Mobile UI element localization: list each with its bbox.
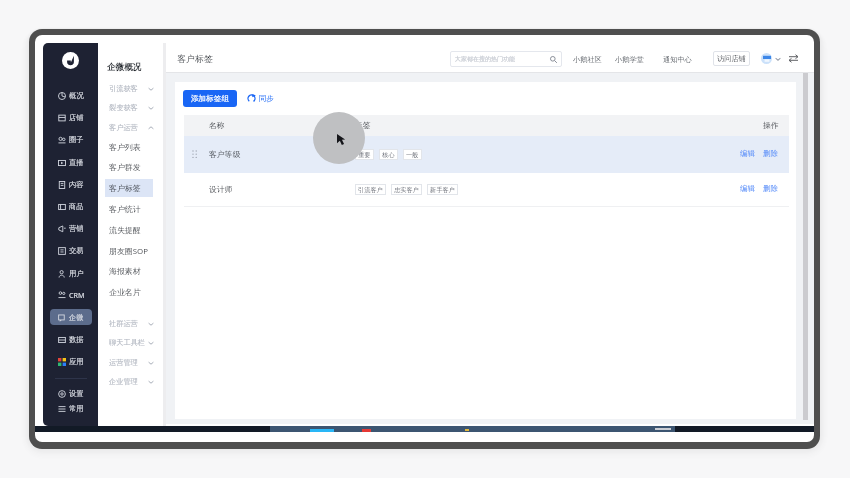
staticText: 客户等级: [209, 149, 241, 159]
button[interactable]: 大家都在搜的热门功能: [450, 51, 562, 67]
staticText: 常用: [69, 404, 84, 413]
staticText: 应用: [69, 357, 84, 366]
staticText: 重要: [358, 151, 371, 159]
button[interactable]: 客户运营: [109, 119, 154, 136]
button[interactable]: 社群运营: [109, 315, 154, 332]
button[interactable]: 流失提醒: [98, 219, 164, 240]
button[interactable]: 应用: [50, 353, 92, 369]
button[interactable]: 企业名片: [98, 281, 164, 302]
button[interactable]: 设计师: [184, 173, 789, 206]
staticText: 引流客户: [358, 186, 383, 194]
button[interactable]: 客户标签: [98, 177, 164, 198]
other: Switch account: [789, 54, 798, 63]
button[interactable]: 聊天工具栏: [109, 334, 154, 351]
button[interactable]: 同步: [247, 94, 274, 103]
staticText: 企业名片: [109, 287, 141, 297]
button[interactable]: 内容: [50, 176, 92, 192]
staticText: 社群运营: [109, 319, 138, 328]
staticText: 商品: [69, 202, 84, 211]
staticText: 营销: [69, 224, 84, 233]
staticText: 客户运营: [109, 123, 138, 132]
staticText: 同步: [259, 94, 274, 103]
staticText: 名称: [209, 120, 225, 130]
button[interactable]: 企微: [50, 309, 92, 325]
staticText: 朋友圈SOP: [109, 246, 148, 257]
button[interactable]: CRM: [50, 287, 92, 303]
staticText: 大家都在搜的热门功能: [455, 55, 515, 63]
staticText: 圈子: [69, 135, 84, 144]
staticText: 客户标签: [109, 183, 141, 193]
button[interactable]: Account: [761, 53, 772, 64]
staticText: 裂变获客: [109, 103, 138, 112]
button[interactable]: 海报素材: [98, 260, 164, 281]
staticText: 聊天工具栏: [109, 338, 145, 347]
button[interactable]: 客户列表: [98, 136, 164, 157]
button[interactable]: 常用: [50, 400, 92, 416]
staticText: 店铺: [69, 113, 84, 122]
button[interactable]: 裂变获客: [109, 99, 154, 116]
button[interactable]: 客户统计: [98, 198, 164, 219]
staticText: 操作: [763, 120, 779, 130]
staticText: 交易: [69, 246, 84, 255]
staticText: 流失提醒: [109, 225, 141, 235]
staticText: 一般: [406, 151, 419, 159]
staticText: 直播: [69, 158, 84, 167]
staticText: 客户群发: [109, 162, 141, 172]
staticText: 核心: [382, 151, 395, 159]
button[interactable]: 店铺: [50, 109, 92, 125]
staticText: 海报素材: [109, 266, 141, 276]
staticText: 数据: [69, 335, 84, 344]
button[interactable]: 小鹅社区: [573, 55, 602, 64]
button[interactable]: 数据: [50, 331, 92, 347]
button[interactable]: 客户等级: [184, 136, 789, 173]
button[interactable]: 小鹅学堂: [615, 55, 644, 64]
staticText: 引流获客: [109, 84, 138, 93]
button[interactable]: 添加标签组: [183, 90, 237, 107]
staticText: 忠实客户: [394, 186, 419, 194]
button[interactable]: 删除: [763, 184, 778, 193]
button[interactable]: 编辑: [740, 184, 755, 193]
button[interactable]: 用户: [50, 265, 92, 281]
staticText: 访问店铺: [717, 54, 746, 63]
button[interactable]: 营销: [50, 220, 92, 236]
button[interactable]: 设置: [50, 385, 92, 401]
staticText: 内容: [69, 180, 84, 189]
button[interactable]: 直播: [50, 154, 92, 170]
button[interactable]: 朋友圈SOP: [98, 240, 164, 261]
staticText: 企微概况: [107, 62, 142, 73]
staticText: 运营管理: [109, 358, 138, 367]
staticText: 客户列表: [109, 142, 141, 152]
staticText: 标签: [355, 120, 371, 130]
button[interactable]: 删除: [763, 149, 778, 158]
button[interactable]: 通知中心: [663, 55, 692, 64]
staticText: 添加标签组: [191, 94, 229, 104]
button[interactable]: 概况: [50, 87, 92, 103]
button[interactable]: 交易: [50, 242, 92, 258]
button[interactable]: 运营管理: [109, 354, 154, 371]
staticText: 客户统计: [109, 204, 141, 214]
staticText: 用户: [69, 269, 84, 278]
button[interactable]: 企业管理: [109, 373, 154, 390]
staticText: 企业管理: [109, 377, 138, 386]
button[interactable]: 商品: [50, 198, 92, 214]
staticText: 企微: [69, 313, 84, 322]
button[interactable]: 引流获客: [109, 80, 154, 97]
staticText: 设计师: [209, 184, 233, 194]
other: Search: [550, 56, 557, 63]
staticText: 新手客户: [430, 186, 455, 194]
staticText: 设置: [69, 389, 84, 398]
staticText: CRM: [69, 290, 85, 300]
button[interactable]: 客户群发: [98, 156, 164, 177]
button[interactable]: 编辑: [740, 149, 755, 158]
staticText: 概况: [69, 91, 84, 100]
button[interactable]: 圈子: [50, 131, 92, 147]
button[interactable]: 访问店铺: [713, 51, 750, 66]
staticText: 客户标签: [177, 53, 213, 64]
